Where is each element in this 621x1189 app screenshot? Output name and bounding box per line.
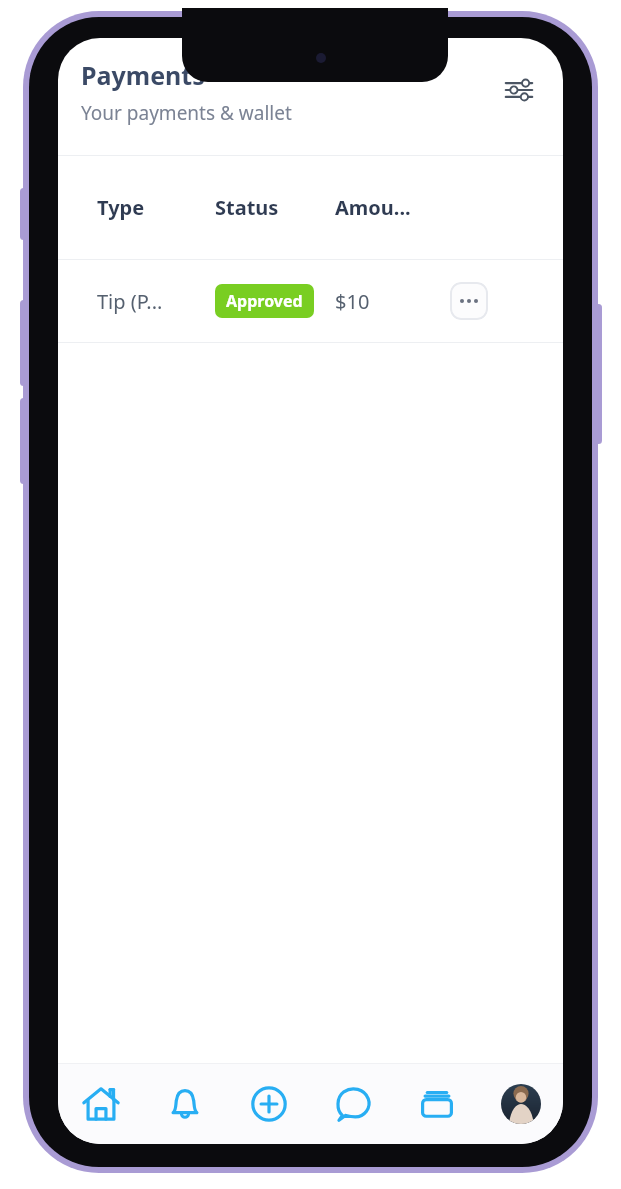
staticText: Payments — [81, 58, 205, 92]
button[interactable]: Profile — [479, 1064, 563, 1144]
button[interactable]: Wallet — [395, 1064, 479, 1144]
staticText: Your payments & wallet — [81, 100, 292, 126]
staticText: Amou... — [335, 194, 411, 221]
button[interactable]: Home — [58, 1064, 143, 1144]
button[interactable]: Messages — [311, 1064, 395, 1144]
staticText: Tip (P... — [97, 288, 215, 315]
staticText: $10 — [335, 288, 450, 315]
button[interactable]: Notifications — [143, 1064, 227, 1144]
button[interactable]: Create — [227, 1064, 311, 1144]
button[interactable]: More options — [450, 282, 488, 320]
button[interactable]: Approved — [215, 284, 314, 318]
button[interactable]: Filter settings — [497, 68, 541, 112]
staticText: Approved — [226, 290, 303, 312]
button[interactable]: Tip (P... — [58, 260, 563, 342]
staticText: Status — [215, 194, 335, 221]
staticText: Type — [97, 194, 215, 221]
